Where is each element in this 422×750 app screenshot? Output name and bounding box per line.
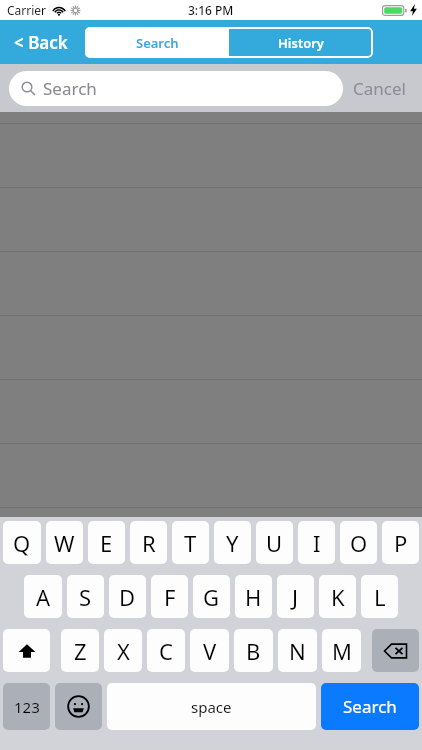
button[interactable]: Cancel <box>343 70 416 107</box>
button[interactable]: Z <box>61 629 99 672</box>
button[interactable]: Emoji <box>55 683 102 730</box>
button[interactable]: Search <box>85 27 229 58</box>
button[interactable]: Y <box>214 521 251 564</box>
staticText: F <box>164 582 176 612</box>
staticText: Search <box>136 34 179 52</box>
staticText: I <box>313 528 321 558</box>
button[interactable]: G <box>193 575 230 618</box>
staticText: H <box>245 582 262 612</box>
staticText: S <box>79 582 92 612</box>
button[interactable]: A <box>24 575 62 618</box>
button[interactable]: space <box>107 683 316 730</box>
staticText: K <box>331 582 345 612</box>
button[interactable]: X <box>104 629 142 672</box>
button[interactable]: E <box>88 521 125 564</box>
staticText: D <box>119 582 136 612</box>
button[interactable]: I <box>298 521 335 564</box>
staticText: A <box>36 582 51 612</box>
staticText: P <box>394 528 408 558</box>
button[interactable]: Shift <box>3 629 50 672</box>
button[interactable]: L <box>361 575 398 618</box>
staticText: O <box>350 528 368 558</box>
button[interactable]: < Back <box>0 22 80 63</box>
staticText: R <box>142 528 156 558</box>
staticText: History <box>278 34 324 52</box>
staticText: E <box>100 528 113 558</box>
button[interactable]: H <box>235 575 272 618</box>
staticText: 123 <box>14 697 40 717</box>
button[interactable]: 123 <box>3 683 50 730</box>
staticText: Y <box>226 528 239 558</box>
staticText: Search <box>43 77 97 100</box>
button[interactable]: J <box>277 575 314 618</box>
button[interactable]: K <box>319 575 356 618</box>
staticText: X <box>117 636 130 666</box>
staticText: B <box>246 636 261 666</box>
button[interactable]: P <box>382 521 419 564</box>
button[interactable]: C <box>147 629 185 672</box>
staticText: M <box>332 636 352 666</box>
staticText: N <box>289 636 306 666</box>
button[interactable]: D <box>109 575 146 618</box>
staticText: Search <box>343 695 397 718</box>
button[interactable]: B <box>234 629 273 672</box>
staticText: J <box>292 582 299 612</box>
button[interactable]: O <box>340 521 377 564</box>
button[interactable]: Backspace <box>372 629 419 672</box>
staticText: L <box>374 582 386 612</box>
staticText: T <box>184 528 197 558</box>
staticText: V <box>203 636 217 666</box>
button[interactable]: T <box>172 521 209 564</box>
button[interactable]: N <box>278 629 317 672</box>
staticText: Carrier <box>7 2 47 18</box>
staticText: Z <box>74 636 87 666</box>
staticText: W <box>54 528 75 558</box>
button[interactable]: U <box>256 521 293 564</box>
staticText: Q <box>13 528 31 558</box>
button[interactable]: History <box>229 27 373 58</box>
button[interactable]: F <box>151 575 188 618</box>
staticText: < Back <box>14 31 68 54</box>
staticText: U <box>266 528 283 558</box>
button[interactable]: Search <box>9 71 343 106</box>
button[interactable]: Q <box>3 521 41 564</box>
button[interactable]: S <box>67 575 104 618</box>
button[interactable]: V <box>190 629 229 672</box>
button[interactable]: Search <box>321 683 419 730</box>
button[interactable]: R <box>130 521 167 564</box>
button[interactable]: W <box>46 521 83 564</box>
staticText: Cancel <box>353 77 406 100</box>
staticText: 3:16 PM <box>188 2 234 18</box>
staticText: G <box>203 582 220 612</box>
button[interactable]: M <box>322 629 361 672</box>
staticText: space <box>191 697 232 717</box>
staticText: C <box>159 636 173 666</box>
